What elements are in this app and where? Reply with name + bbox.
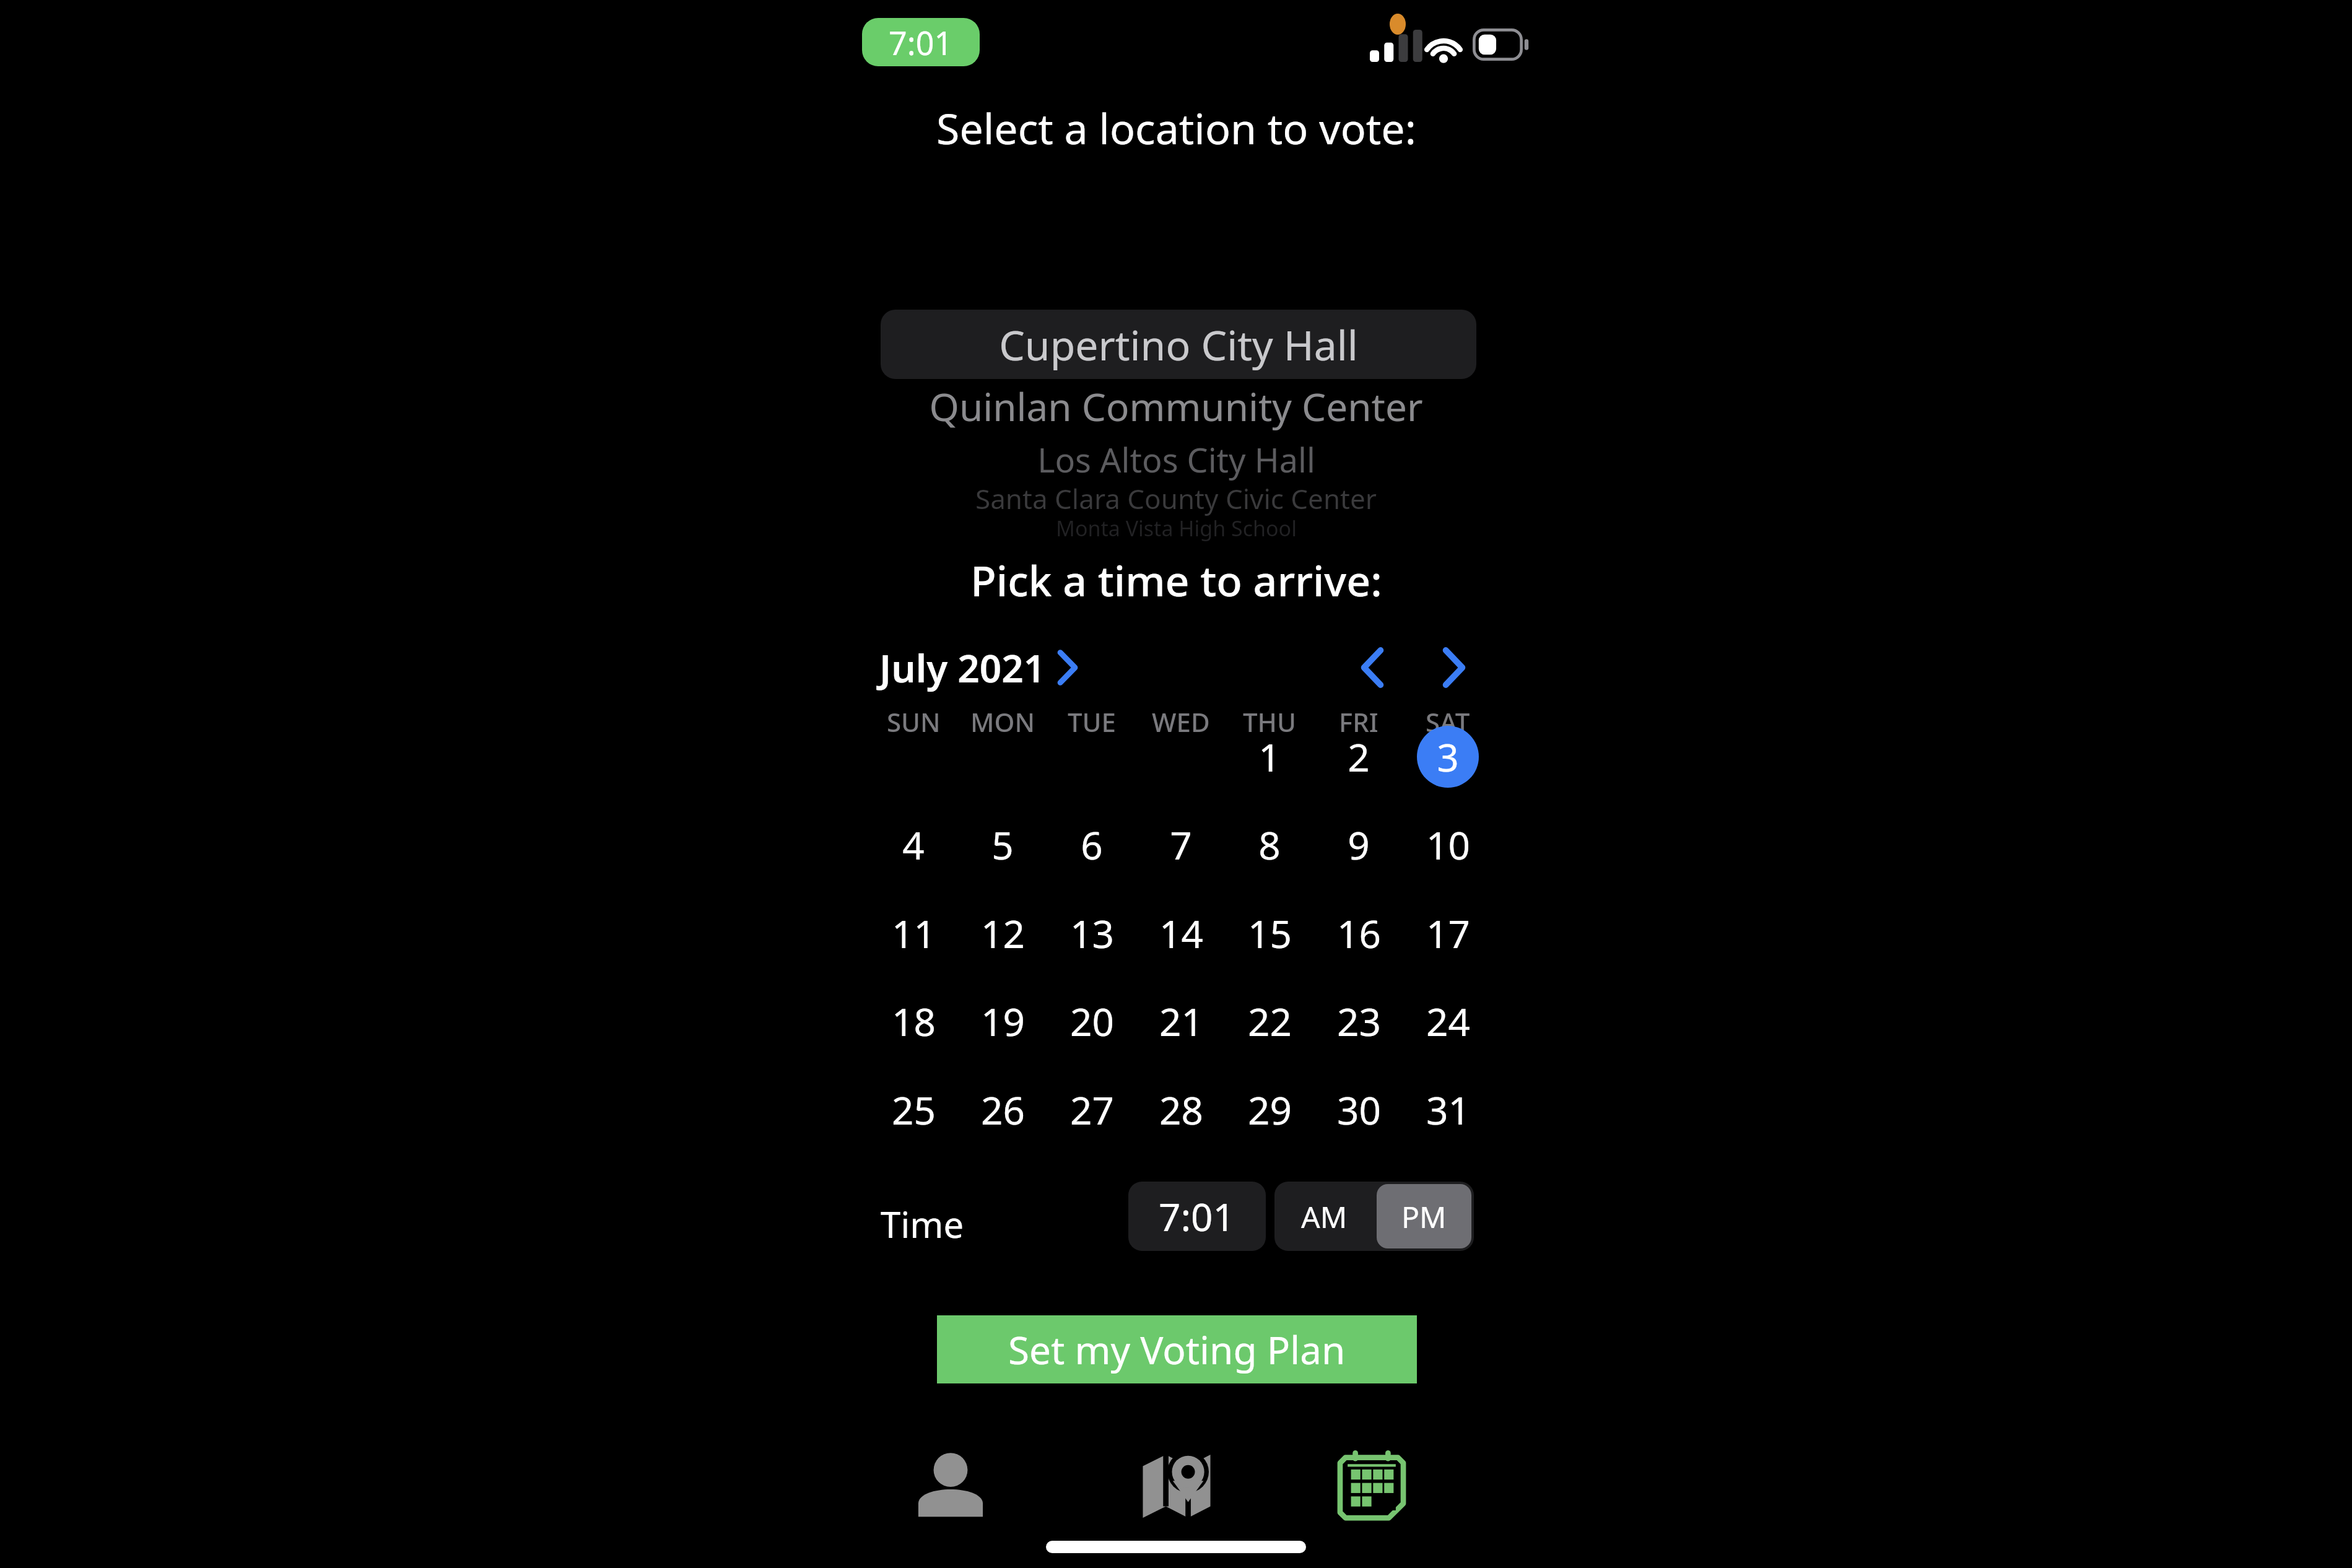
staticText: 25 — [892, 1084, 936, 1136]
button[interactable]: Profile — [901, 1437, 1000, 1536]
staticText: MON — [970, 704, 1035, 739]
button[interactable]: July 2021 — [879, 638, 1078, 697]
button[interactable]: 24 — [1406, 984, 1490, 1058]
button[interactable]: Map — [1127, 1437, 1226, 1536]
staticText: 31 — [1426, 1084, 1470, 1136]
staticText: 14 — [1159, 907, 1203, 959]
staticText: 6 — [1081, 819, 1103, 871]
button[interactable]: 8 — [1227, 808, 1312, 882]
staticText: 23 — [1337, 995, 1381, 1047]
staticText: 18 — [892, 995, 936, 1047]
button[interactable]: 10 — [1406, 808, 1490, 882]
staticText: AM — [1301, 1196, 1348, 1237]
button[interactable]: 13 — [1050, 896, 1134, 970]
button[interactable]: Los Altos City Hall — [0, 437, 2352, 482]
button[interactable]: 26 — [960, 1073, 1045, 1147]
button[interactable]: 23 — [1317, 984, 1401, 1058]
button[interactable]: 5 — [960, 808, 1045, 882]
button[interactable]: Cupertino City Hall — [881, 310, 1476, 379]
staticText: 11 — [892, 907, 936, 959]
staticText: FRI — [1339, 704, 1379, 739]
staticText: 19 — [981, 995, 1025, 1047]
staticText: Set my Voting Plan — [1008, 1323, 1346, 1375]
staticText: 28 — [1159, 1084, 1203, 1136]
button[interactable]: 21 — [1139, 984, 1223, 1058]
staticText: 12 — [981, 907, 1025, 959]
staticText: 4 — [902, 819, 925, 871]
staticText: THU — [1243, 704, 1297, 739]
button[interactable]: AM — [1274, 1182, 1374, 1251]
staticText: SAT — [1426, 704, 1470, 739]
button[interactable]: PM — [1377, 1184, 1471, 1248]
staticText: 15 — [1248, 907, 1292, 959]
button[interactable]: Next month — [1424, 638, 1484, 697]
button[interactable]: 20 — [1050, 984, 1134, 1058]
staticText: July 2021 — [879, 642, 1046, 694]
staticText: 21 — [1159, 995, 1203, 1047]
button[interactable]: 16 — [1317, 896, 1401, 970]
button[interactable]: 15 — [1227, 896, 1312, 970]
button[interactable]: 4 — [871, 808, 956, 882]
button[interactable]: 18 — [871, 984, 956, 1058]
staticText: Time — [881, 1200, 964, 1248]
staticText: 8 — [1258, 819, 1281, 871]
button[interactable]: 19 — [960, 984, 1045, 1058]
button[interactable]: 25 — [871, 1073, 956, 1147]
staticText: 3 — [1437, 731, 1459, 783]
staticText: Quinlan Community Center — [929, 380, 1423, 432]
staticText: Santa Clara County Civic Center — [975, 480, 1377, 516]
button[interactable]: 11 — [871, 896, 956, 970]
staticText: Monta Vista High School — [1056, 514, 1297, 542]
staticText: TUE — [1068, 704, 1116, 739]
button[interactable]: 12 — [960, 896, 1045, 970]
staticText: 9 — [1348, 819, 1370, 871]
staticText: Los Altos City Hall — [1037, 437, 1315, 482]
staticText: 7 — [1170, 819, 1192, 871]
staticText: 27 — [1070, 1084, 1114, 1136]
staticText: Pick a time to arrive: — [970, 551, 1382, 609]
button[interactable]: 7 — [1139, 808, 1223, 882]
button[interactable]: 27 — [1050, 1073, 1134, 1147]
staticText: 2 — [1348, 731, 1370, 783]
staticText: 16 — [1337, 907, 1381, 959]
staticText: PM — [1401, 1196, 1447, 1237]
button[interactable]: Santa Clara County Civic Center — [0, 480, 2352, 516]
staticText: 26 — [981, 1084, 1025, 1136]
staticText: 17 — [1426, 907, 1470, 959]
staticText: Select a location to vote: — [936, 99, 1416, 157]
button[interactable]: Voting plan calendar — [1322, 1437, 1421, 1536]
button[interactable]: 31 — [1406, 1073, 1490, 1147]
button[interactable]: 3 — [1406, 720, 1490, 794]
button[interactable]: 1 — [1227, 720, 1312, 794]
button[interactable]: 22 — [1227, 984, 1312, 1058]
button[interactable]: 30 — [1317, 1073, 1401, 1147]
button[interactable]: 7:01 — [1128, 1182, 1266, 1251]
staticText: 13 — [1070, 907, 1114, 959]
button[interactable]: 17 — [1406, 896, 1490, 970]
staticText: 5 — [991, 819, 1014, 871]
staticText: Cupertino City Hall — [999, 316, 1358, 372]
button[interactable]: Previous month — [1343, 638, 1402, 697]
staticText: 20 — [1070, 995, 1114, 1047]
button[interactable]: 6 — [1050, 808, 1134, 882]
button[interactable]: 14 — [1139, 896, 1223, 970]
staticText: WED — [1152, 704, 1210, 739]
staticText: 1 — [1258, 731, 1281, 783]
button[interactable]: 29 — [1227, 1073, 1312, 1147]
staticText: 10 — [1426, 819, 1470, 871]
staticText: 30 — [1337, 1084, 1381, 1136]
staticText: SUN — [887, 704, 941, 739]
button[interactable]: 2 — [1317, 720, 1401, 794]
staticText: 29 — [1248, 1084, 1292, 1136]
staticText: 7:01 — [1159, 1190, 1235, 1242]
staticText: 24 — [1426, 995, 1470, 1047]
staticText: 7:01 — [889, 20, 953, 64]
button[interactable]: 28 — [1139, 1073, 1223, 1147]
button[interactable]: Set my Voting Plan — [937, 1315, 1417, 1383]
button[interactable]: Monta Vista High School — [0, 514, 2352, 542]
button[interactable]: 9 — [1317, 808, 1401, 882]
button[interactable]: Quinlan Community Center — [0, 380, 2352, 432]
staticText: 22 — [1248, 995, 1292, 1047]
